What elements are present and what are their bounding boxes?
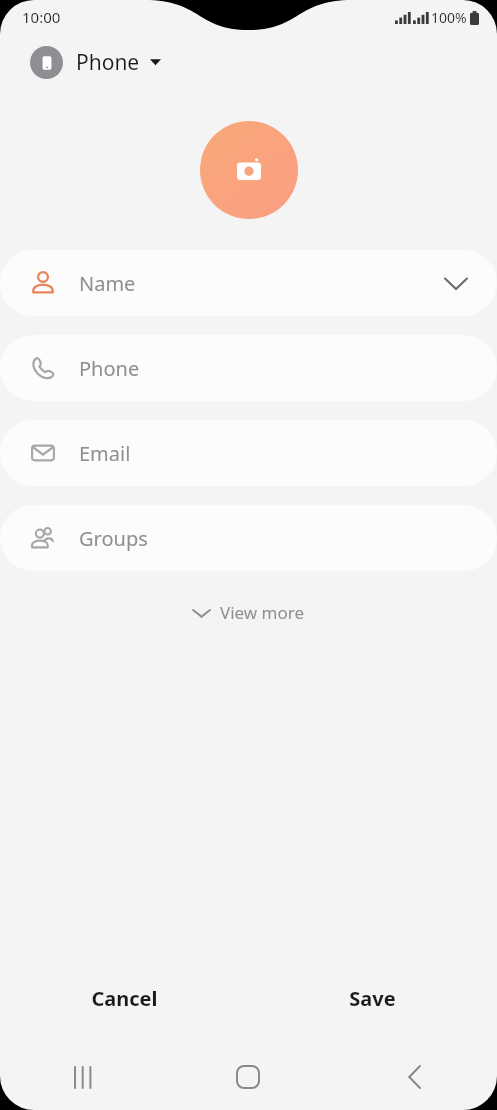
staticText: Groups xyxy=(79,525,467,552)
button[interactable]: Add photo xyxy=(200,121,298,219)
button[interactable]: Home xyxy=(165,1055,331,1099)
button[interactable]: Back xyxy=(331,1055,497,1099)
staticText: Email xyxy=(79,440,467,467)
button[interactable]: Phone xyxy=(0,335,497,401)
button[interactable]: View more xyxy=(177,593,321,632)
staticText: Name xyxy=(79,270,445,297)
staticText: Phone xyxy=(76,48,140,77)
staticText: Phone xyxy=(79,355,467,382)
button[interactable]: Recent apps xyxy=(0,1055,165,1099)
staticText: Cancel xyxy=(91,985,158,1012)
staticText: 10:00 xyxy=(22,7,61,27)
button[interactable]: Phone xyxy=(0,34,497,90)
button[interactable]: Cancel xyxy=(0,972,248,1024)
button[interactable]: Save xyxy=(248,972,497,1024)
staticText: View more xyxy=(220,601,305,624)
staticText: Save xyxy=(349,985,396,1012)
button[interactable]: Email xyxy=(0,420,497,486)
button[interactable]: Name xyxy=(0,250,497,316)
staticText: 100% xyxy=(431,8,467,27)
button[interactable]: Groups xyxy=(0,505,497,571)
